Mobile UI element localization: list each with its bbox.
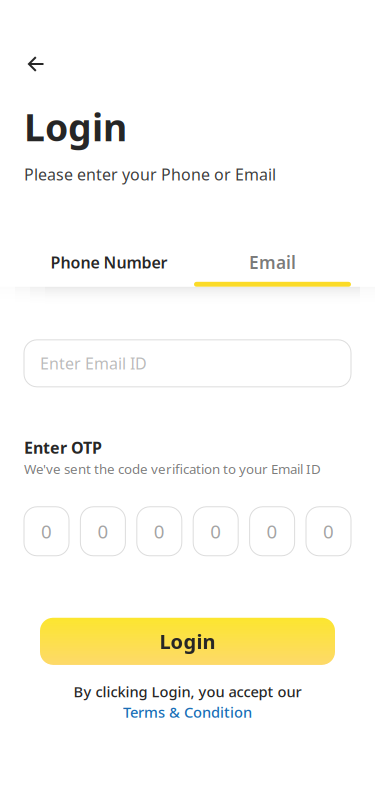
- button[interactable]: Back: [13, 42, 57, 86]
- staticText: Please enter your Phone or Email: [24, 164, 276, 185]
- staticText: Terms & Condition: [123, 702, 252, 722]
- staticText: Enter OTP: [24, 437, 102, 458]
- staticText: Login: [159, 628, 215, 655]
- staticText: 0: [267, 519, 278, 544]
- staticText: We've sent the code verification to your…: [24, 460, 321, 478]
- button[interactable]: OTP digit: [24, 507, 69, 556]
- staticText: Login: [24, 102, 127, 152]
- staticText: 0: [210, 519, 221, 544]
- staticText: Enter Email ID: [40, 353, 147, 374]
- staticText: 0: [41, 519, 52, 544]
- staticText: Phone Number: [50, 252, 167, 273]
- button[interactable]: Phone Number: [24, 243, 194, 287]
- button[interactable]: Terms & Condition: [123, 702, 252, 722]
- button[interactable]: OTP digit: [137, 507, 182, 556]
- button[interactable]: OTP digit: [80, 507, 125, 556]
- staticText: 0: [323, 519, 334, 544]
- button[interactable]: OTP digit: [193, 507, 238, 556]
- button[interactable]: Email: [194, 243, 351, 287]
- staticText: By clicking Login, you accept our: [73, 682, 301, 701]
- staticText: 0: [97, 519, 108, 544]
- staticText: Email: [249, 251, 296, 274]
- button[interactable]: OTP digit: [250, 507, 295, 556]
- button[interactable]: Login: [40, 618, 335, 665]
- staticText: 0: [154, 519, 165, 544]
- button[interactable]: OTP digit: [306, 507, 351, 556]
